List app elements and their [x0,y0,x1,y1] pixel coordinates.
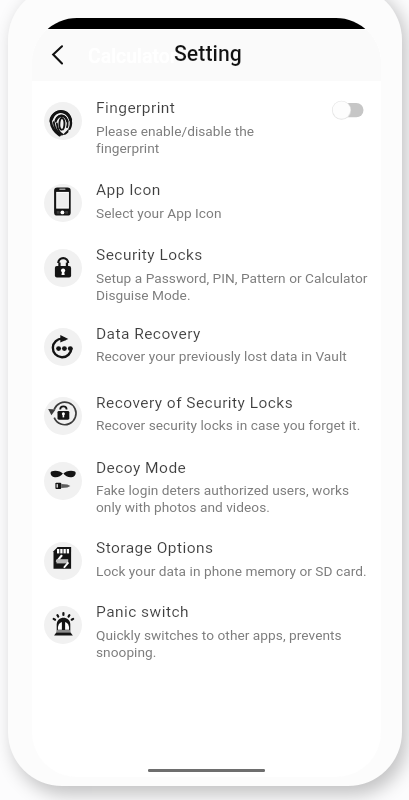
button[interactable]: Recovery of Security Locks [32,376,381,440]
staticText: Setting [174,41,242,66]
staticText: Fake login deters authorized users, work… [96,482,350,516]
staticText: Fingerprint [96,99,176,117]
staticText: Decoy Mode [96,459,187,477]
staticText: Data Recovery [96,325,201,343]
staticText: Select your App Icon [96,205,222,222]
staticText: App Icon [96,181,161,199]
button[interactable]: Data Recovery [32,307,381,376]
staticText: Storage Options [96,539,214,557]
staticText: Calculator [88,45,177,68]
button[interactable]: Fingerprint [32,81,381,163]
staticText: Panic switch [96,603,189,621]
staticText: Quickly switches to other apps, prevents… [96,627,342,661]
staticText: Recovery of Security Locks [96,394,294,412]
button[interactable]: App Icon [32,163,381,228]
staticText: Setup a Password, PIN, Pattern or Calcul… [96,270,368,304]
button[interactable]: Security Locks [32,228,381,307]
button[interactable]: Decoy Mode [32,441,381,522]
staticText: Recover your previously lost data in Vau… [96,348,347,365]
staticText: Please enable/disable the fingerprint [96,123,255,157]
button[interactable]: Panic switch [32,585,381,667]
button[interactable]: Storage Options [32,521,381,585]
staticText: Security Locks [96,246,203,264]
staticText: Lock your data in phone memory or SD car… [96,563,367,580]
staticText: Recover security locks in case you forge… [96,417,361,434]
button[interactable]: Toggle fingerprint [331,98,367,122]
button[interactable]: Back [32,32,77,77]
